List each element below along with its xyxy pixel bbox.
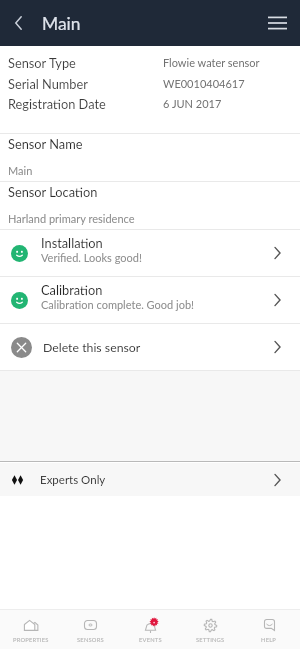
button[interactable]: HELP	[240, 610, 298, 649]
staticText: Registration Date	[8, 96, 106, 111]
staticText: Serial Number	[8, 76, 88, 91]
staticText: Calibration complete. Good job!	[41, 298, 195, 311]
staticText: Main	[8, 164, 33, 177]
button[interactable]: EVENTS	[121, 610, 179, 649]
staticText: Sensor Location	[8, 184, 98, 199]
staticText: SENSORS	[77, 636, 104, 643]
staticText: Main	[42, 13, 81, 34]
button[interactable]: Sensor Location	[0, 182, 300, 229]
staticText: EVENTS	[139, 636, 162, 643]
button[interactable]: Menu	[262, 8, 292, 38]
staticText: SETTINGS	[196, 636, 225, 643]
staticText: 6 JUN 2017	[163, 97, 222, 110]
staticText: PROPERTIES	[13, 636, 49, 643]
button[interactable]: SETTINGS	[181, 610, 239, 649]
staticText: Experts Only	[40, 473, 106, 487]
button[interactable]: PROPERTIES	[2, 610, 60, 649]
staticText: Verified. Looks good!	[41, 251, 142, 264]
staticText: Flowie water sensor	[163, 56, 260, 69]
staticText: Delete this sensor	[43, 340, 141, 355]
button[interactable]: Experts Only	[0, 463, 300, 496]
button[interactable]: Calibration	[0, 277, 300, 323]
staticText: WE0010404617	[163, 77, 245, 90]
button[interactable]: Delete this sensor	[0, 324, 300, 370]
button[interactable]: Sensor Name	[0, 134, 300, 181]
button[interactable]: SENSORS	[61, 610, 119, 649]
staticText: Harland primary residence	[8, 212, 135, 225]
button[interactable]: Installation	[0, 230, 300, 276]
button[interactable]: Back	[1, 6, 35, 40]
staticText: Installation	[41, 235, 103, 250]
staticText: Calibration	[41, 282, 103, 297]
staticText: Sensor Type	[8, 55, 76, 70]
staticText: HELP	[261, 636, 277, 643]
staticText: Sensor Name	[8, 136, 83, 151]
